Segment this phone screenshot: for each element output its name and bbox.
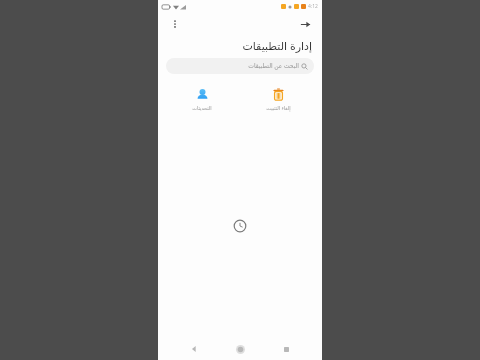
button[interactable]: Back — [184, 339, 204, 359]
button[interactable]: البحث عن التطبيقات — [166, 58, 314, 74]
staticText: التحديثات — [192, 105, 212, 111]
staticText: 4:12 — [308, 3, 318, 10]
button[interactable]: Recent apps — [276, 339, 296, 359]
button[interactable]: إلغاء التثبيت — [256, 83, 300, 114]
button[interactable]: More options — [166, 15, 184, 33]
staticText: البحث عن التطبيقات — [248, 62, 299, 70]
staticText: إلغاء التثبيت — [266, 105, 291, 112]
button[interactable]: Home — [230, 339, 250, 359]
button[interactable]: Forward — [296, 15, 314, 33]
button[interactable]: التحديثات — [180, 83, 224, 113]
staticText: إدارة التطبيقات — [242, 38, 312, 53]
